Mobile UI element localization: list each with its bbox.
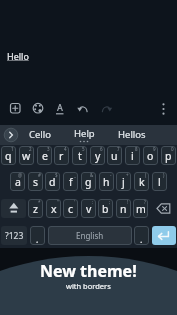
button[interactable]: w	[19, 146, 34, 165]
button[interactable]	[8, 101, 22, 115]
staticText: :	[92, 199, 94, 205]
staticText: t	[78, 149, 82, 163]
staticText: u	[111, 149, 118, 163]
staticText: g	[85, 175, 92, 189]
staticText: '	[74, 199, 76, 205]
staticText: ?123	[5, 230, 24, 242]
button[interactable]: t	[72, 146, 87, 165]
staticText: #	[38, 172, 41, 178]
button[interactable]	[134, 226, 149, 245]
staticText: 2	[29, 146, 32, 152]
staticText: ?	[144, 199, 146, 205]
staticText: a	[15, 175, 21, 189]
button[interactable]: a	[10, 172, 25, 191]
button[interactable]: A	[54, 101, 66, 113]
button[interactable]: Help	[70, 125, 98, 141]
staticText: 4	[64, 146, 67, 152]
staticText: h	[103, 175, 110, 189]
staticText: l	[158, 175, 161, 189]
staticText: "	[57, 199, 59, 205]
staticText: m	[136, 202, 146, 216]
staticText: !	[127, 199, 129, 205]
staticText: &	[90, 172, 94, 178]
staticText: Hello	[7, 50, 29, 62]
staticText: 9	[153, 146, 156, 152]
button[interactable]	[77, 101, 91, 115]
staticText: i	[131, 149, 134, 163]
button[interactable]	[150, 199, 176, 218]
button[interactable]: p	[161, 146, 176, 165]
button[interactable]: o	[143, 146, 158, 165]
staticText: @	[18, 172, 23, 178]
button[interactable]: b	[98, 199, 113, 218]
staticText: with borders	[66, 281, 111, 291]
staticText: b	[102, 202, 109, 216]
button[interactable]: l	[152, 172, 167, 191]
staticText: -	[110, 172, 112, 178]
staticText: o	[147, 149, 154, 163]
staticText: Help	[74, 127, 95, 140]
staticText: d	[49, 175, 56, 189]
button[interactable]: z	[28, 199, 43, 218]
button[interactable]	[99, 101, 113, 115]
button[interactable]: ?123	[1, 226, 27, 245]
staticText: 5	[82, 146, 85, 152]
button[interactable]: r	[54, 146, 69, 165]
button[interactable]: u	[107, 146, 122, 165]
staticText: w	[22, 149, 31, 163]
staticText: English	[76, 230, 104, 241]
staticText: $	[55, 172, 58, 178]
button[interactable]: m	[133, 199, 148, 218]
staticText: s	[33, 175, 39, 189]
staticText: A	[57, 101, 63, 113]
staticText: p	[165, 149, 172, 163]
staticText: *	[38, 199, 41, 205]
button[interactable]: h	[99, 172, 114, 191]
button[interactable]	[1, 199, 26, 218]
button[interactable]: s	[28, 172, 43, 191]
button[interactable]: d	[45, 172, 60, 191]
staticText: Hellos	[118, 128, 146, 141]
staticText: ;	[109, 199, 111, 205]
staticText: +	[126, 172, 129, 178]
button[interactable]: g	[81, 172, 96, 191]
button[interactable]	[156, 101, 171, 117]
staticText: n	[120, 202, 127, 216]
staticText: 6	[100, 146, 103, 152]
button[interactable]: f	[63, 172, 78, 191]
staticText: 7	[117, 146, 120, 152]
button[interactable]: x	[46, 199, 61, 218]
button[interactable]: e	[37, 146, 52, 165]
button[interactable]: k	[134, 172, 149, 191]
staticText: .	[140, 233, 143, 243]
staticText: _	[74, 172, 76, 178]
staticText: 0	[171, 146, 174, 152]
staticText: c	[68, 202, 74, 216]
staticText: f	[69, 175, 73, 189]
staticText: New theme!	[40, 260, 137, 278]
staticText: 3	[47, 146, 50, 152]
button[interactable]: v	[81, 199, 96, 218]
button[interactable]: y	[90, 146, 105, 165]
staticText: q	[5, 149, 12, 163]
button[interactable]	[152, 226, 176, 245]
button[interactable]: Cello	[24, 125, 56, 143]
button[interactable]: Hellos	[114, 125, 150, 143]
button[interactable]	[30, 226, 45, 245]
staticText: z	[33, 202, 38, 216]
button[interactable]: c	[63, 199, 78, 218]
button[interactable]: j	[116, 172, 131, 191]
button[interactable]: i	[125, 146, 140, 165]
staticText: j	[122, 175, 125, 189]
button[interactable]	[48, 226, 132, 245]
staticText: Cello	[29, 128, 52, 141]
staticText: 1	[11, 146, 14, 152]
button[interactable]: q	[1, 146, 16, 165]
button[interactable]	[31, 101, 45, 115]
staticText: ,	[36, 233, 39, 243]
button[interactable]	[4, 128, 18, 142]
button[interactable]: n	[116, 199, 131, 218]
staticText: e	[42, 149, 48, 163]
staticText: k	[139, 175, 145, 189]
staticText: 8	[135, 146, 138, 152]
